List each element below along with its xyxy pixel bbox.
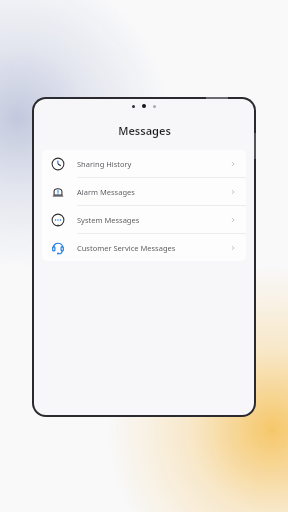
button[interactable]: System Messages (42, 206, 246, 234)
staticText: Alarm Messages (77, 187, 229, 197)
staticText: System Messages (77, 215, 229, 225)
staticText: Customer Service Messages (77, 243, 229, 253)
button[interactable]: Alarm Messages (42, 178, 246, 206)
button[interactable]: Sharing History (42, 150, 246, 178)
button[interactable]: Customer Service Messages (42, 234, 246, 261)
staticText: Messages (118, 123, 171, 138)
staticText: Sharing History (77, 159, 229, 169)
